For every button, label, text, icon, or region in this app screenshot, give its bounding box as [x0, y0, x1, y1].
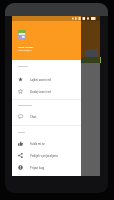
staticText: Vozni red BiH: [18, 45, 34, 48]
button[interactable]: Sviđa mi se: [12, 138, 81, 149]
staticText: Ostalo: [18, 131, 25, 134]
staticText: Chat: [30, 115, 37, 119]
staticText: Sviđa mi se: [30, 142, 45, 146]
staticText: Podijeli s prijateljima: [30, 154, 58, 158]
staticText: Prijavi bug: [30, 166, 45, 170]
staticText: vozni.red@ba: [18, 49, 32, 52]
staticText: Dodaj vozni red: [30, 90, 51, 94]
button[interactable]: Chat: [12, 111, 81, 122]
button[interactable]: Dodaj vozni red: [12, 86, 81, 97]
button[interactable]: Lajkni vozni red: [12, 74, 81, 85]
button[interactable]: Podijeli s prijateljima: [12, 150, 81, 161]
staticText: Vozni red: [18, 65, 28, 68]
staticText: Lajkni vozni red: [30, 78, 51, 82]
staticText: Komunikacija: [18, 104, 33, 107]
button[interactable]: Prijavi bug: [12, 162, 81, 173]
